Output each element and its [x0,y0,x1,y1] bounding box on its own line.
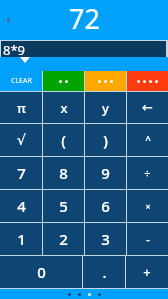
button[interactable]: ^ [127,124,168,156]
button[interactable]: y [85,92,126,123]
button[interactable]: ÷ [127,157,168,189]
button[interactable]: 8*9 [1,41,166,57]
button[interactable]: ) [85,124,126,156]
staticText: ^ [145,133,151,147]
button[interactable]: . [83,256,125,288]
button[interactable]: ← [127,92,168,123]
staticText: + [143,263,151,281]
staticText: CLEAR [11,76,32,86]
staticText: . [102,262,107,282]
button[interactable]: π [0,92,42,123]
staticText: - [146,232,150,247]
staticText: 8*9 [3,41,26,57]
button[interactable]: Orange preset [85,71,126,91]
button[interactable]: - [127,223,168,255]
staticText: 2 [59,229,68,249]
staticText: 6 [101,196,110,216]
staticText: 4 [17,196,26,216]
button[interactable]: Red preset [127,71,168,91]
staticText: 8 [59,163,68,183]
button[interactable]: 8 [43,157,84,189]
staticText: 7 [17,163,26,183]
button[interactable]: 4 [0,190,42,222]
staticText: x [60,99,68,117]
button[interactable]: 2 [43,223,84,255]
staticText: 3 [101,229,110,249]
staticText: ← [142,100,153,115]
button[interactable]: ( [43,124,84,156]
button[interactable]: 7 [0,157,42,189]
button[interactable]: × [127,190,168,222]
staticText: ( [61,130,66,150]
staticText: π [17,99,26,117]
button[interactable]: 0 [0,256,82,288]
button[interactable]: √ [0,124,42,156]
staticText: √ [17,132,26,148]
button[interactable]: Green preset [43,71,84,91]
button[interactable]: CLEAR [0,71,42,91]
button[interactable]: x [43,92,84,123]
staticText: 1 [17,229,26,249]
staticText: 0 [37,262,46,282]
staticText: ÷ [144,166,151,181]
staticText: ) [103,130,108,150]
staticText: × [145,200,151,212]
button[interactable]: 5 [43,190,84,222]
staticText: y [102,99,109,117]
button[interactable]: 1 [0,223,42,255]
button[interactable]: + [126,256,168,288]
button[interactable]: 6 [85,190,126,222]
staticText: 72 [69,0,100,37]
staticText: 5 [59,196,68,216]
staticText: 9 [101,163,110,183]
button[interactable]: 9 [85,157,126,189]
button[interactable]: 3 [85,223,126,255]
